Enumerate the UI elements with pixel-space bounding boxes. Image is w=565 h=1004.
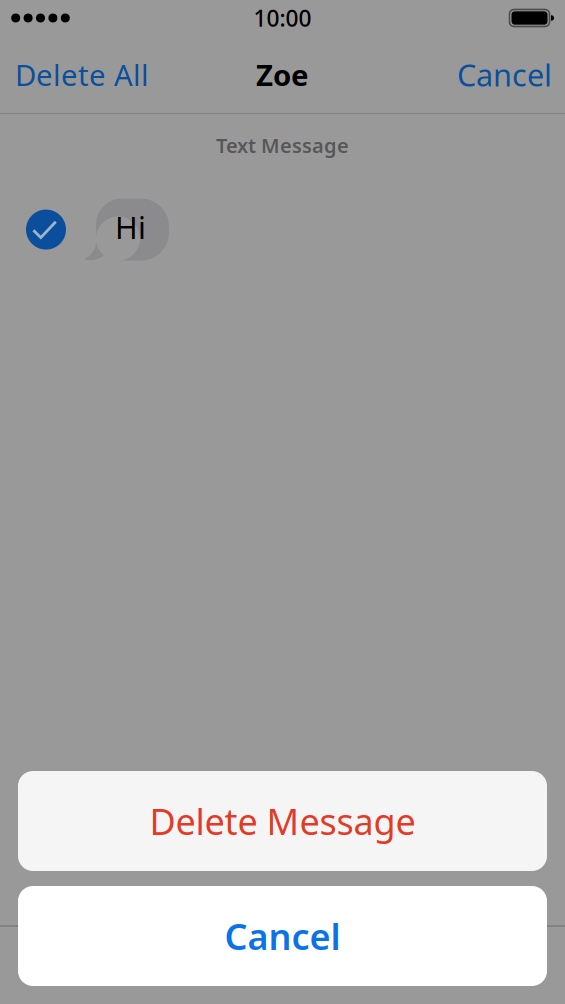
button[interactable]: Cancel	[18, 886, 547, 986]
staticText: Text Message	[216, 132, 349, 159]
staticText: Delete Message	[149, 797, 415, 845]
staticText: Hi	[115, 207, 146, 247]
staticText: Cancel	[457, 54, 552, 95]
staticText: 10:00	[253, 3, 311, 33]
staticText: Cancel	[224, 912, 340, 960]
staticText: Delete All	[15, 55, 149, 94]
staticText: Zoe	[256, 55, 309, 94]
button[interactable]: Delete Message	[18, 771, 547, 871]
button[interactable]: Delete All	[0, 39, 164, 109]
button[interactable]: Cancel	[444, 39, 565, 109]
